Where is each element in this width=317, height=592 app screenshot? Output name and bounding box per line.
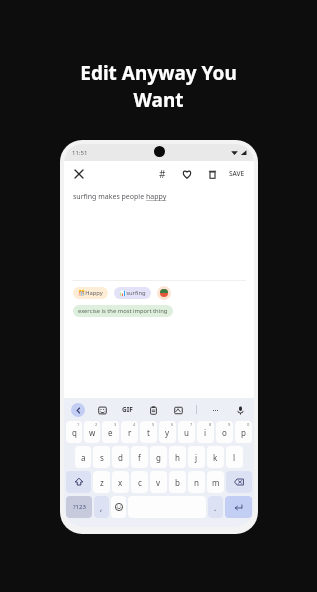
button[interactable]: ?123 [66,496,92,518]
button[interactable]: v [150,471,167,493]
button[interactable]: z [93,471,110,493]
button[interactable]: w [84,421,100,443]
staticText: e [108,427,113,438]
staticText: 4 [133,422,136,427]
staticText: SAVE [229,169,245,178]
button[interactable]: Emoji [111,496,126,518]
staticText: exercise is the most import thing [78,307,168,315]
button[interactable]: GIF [120,403,135,416]
button[interactable]: b [169,471,186,493]
staticText: 📊surfing [119,289,146,297]
button[interactable]: SAVE [227,165,247,182]
staticText: x [118,477,123,488]
button[interactable]: Enter [225,496,252,518]
button[interactable]: 🎊Happy [73,287,108,299]
button[interactable]: Tag [154,166,170,182]
staticText: u [184,427,189,438]
button[interactable]: , [94,496,109,518]
button[interactable]: Clipboard [146,403,160,417]
staticText: 8 [209,422,212,427]
button[interactable]: i [197,421,214,443]
staticText: ?123 [73,503,86,511]
staticText: y [165,427,170,438]
staticText: a [81,452,86,463]
button[interactable]: n [188,471,205,493]
button[interactable]: m [207,471,224,493]
button[interactable]: Backspace [226,471,252,493]
staticText: c [138,477,142,488]
staticText: 11:51 [72,149,88,157]
staticText: p [241,427,246,438]
staticText: i [204,427,207,438]
staticText: r [128,427,132,438]
button[interactable]: r [121,421,138,443]
staticText: l [233,452,236,463]
button[interactable]: u [178,421,195,443]
staticText: 6 [171,422,174,427]
button[interactable]: p [235,421,252,443]
button[interactable]: Emoji tag [157,286,171,300]
button[interactable]: t [140,421,157,443]
button[interactable]: Voice input [233,403,247,417]
staticText: j [195,452,198,463]
button[interactable]: a [75,446,91,468]
staticText: d [118,452,123,463]
button[interactable]: 📊surfing [114,287,151,299]
staticText: h [175,452,180,463]
staticText: 2 [95,422,98,427]
staticText: GIF [122,405,133,414]
staticText: 7 [190,422,193,427]
staticText: k [213,452,218,463]
staticText: # [159,167,166,181]
button[interactable]: s [93,446,110,468]
staticText: o [222,427,227,438]
button[interactable]: k [207,446,224,468]
button[interactable]: d [112,446,129,468]
button[interactable]: x [112,471,129,493]
button[interactable]: y [159,421,176,443]
staticText: 9 [228,422,231,427]
staticText: g [156,452,161,463]
button[interactable]: Favorite [179,166,195,182]
staticText: z [100,477,104,488]
staticText: b [175,477,180,488]
staticText: happy [146,192,167,202]
button[interactable]: o [216,421,233,443]
staticText: q [72,427,77,438]
button[interactable]: j [188,446,205,468]
staticText: surfing makes people [73,192,146,202]
button[interactable]: Close [71,166,87,182]
staticText: f [138,452,141,463]
staticText: , [100,502,103,513]
button[interactable]: Translate [171,403,185,417]
button[interactable]: g [150,446,167,468]
staticText: 1 [77,422,80,427]
button[interactable]: h [169,446,186,468]
button[interactable]: q [66,421,82,443]
staticText: . [214,502,217,513]
staticText: t [147,427,150,438]
staticText: w [89,427,96,438]
staticText: m [212,477,220,488]
staticText: 0 [247,422,250,427]
staticText: n [194,477,199,488]
staticText: v [156,477,161,488]
staticText: 3 [114,422,117,427]
button[interactable]: Back [71,403,85,417]
button[interactable]: exercise is the most import thing [73,305,173,317]
button[interactable]: f [131,446,148,468]
button[interactable]: c [131,471,148,493]
staticText: s [100,452,104,463]
button[interactable]: More options [208,403,222,417]
button[interactable]: Stickers [95,403,109,417]
button[interactable]: Shift [66,471,91,493]
staticText: Edit Anyway You Want [80,60,237,113]
staticText: 5 [152,422,155,427]
button[interactable]: l [226,446,243,468]
button[interactable]: e [102,421,119,443]
button[interactable]: . [208,496,223,518]
button[interactable]: Delete [204,166,220,182]
staticText: 🎊Happy [78,289,103,297]
